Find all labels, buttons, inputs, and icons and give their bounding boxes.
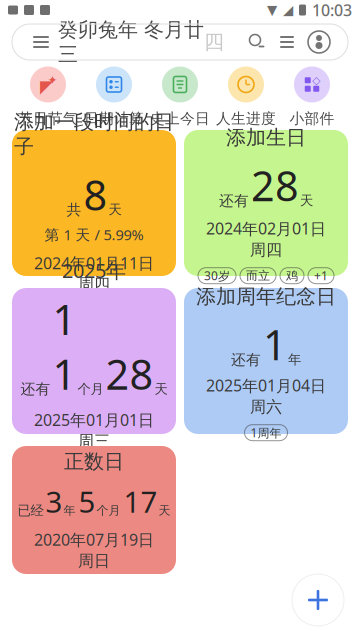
staticText: 28: [105, 346, 153, 401]
button[interactable]: 添加生日: [184, 130, 348, 276]
staticText: ◇: [312, 74, 320, 86]
staticText: 1周年: [250, 425, 281, 441]
button[interactable]: 日期计算: [81, 66, 147, 127]
button[interactable]: 正数日: [12, 446, 176, 574]
staticText: 2020年07月19日: [34, 529, 154, 550]
staticText: 天: [158, 503, 170, 518]
staticText: 30岁: [204, 268, 230, 284]
staticText: 天: [154, 381, 167, 397]
staticText: ▼: [267, 2, 277, 17]
button[interactable]: 癸卯兔年 冬月廿三: [58, 25, 242, 59]
staticText: 2025年01月01日: [34, 409, 154, 430]
staticText: 2025年01月04日: [206, 375, 326, 396]
button[interactable]: ✦: [15, 66, 81, 127]
staticText: 小部件: [289, 109, 334, 127]
staticText: 天: [300, 192, 313, 209]
staticText: 周三: [78, 431, 110, 451]
staticText: 添加周年纪念日: [196, 284, 336, 309]
staticText: 年: [288, 351, 301, 368]
staticText: 史上今日: [150, 109, 210, 127]
staticText: 2024年01月11日: [34, 252, 154, 273]
staticText: 周四: [78, 274, 110, 294]
staticText: 28: [251, 158, 299, 213]
staticText: ✦: [47, 73, 57, 87]
staticText: 5: [78, 482, 95, 521]
staticText: 添加生日: [226, 125, 306, 150]
staticText: 10:03: [312, 0, 352, 21]
staticText: 1: [263, 317, 287, 372]
button[interactable]: Menu: [24, 25, 58, 59]
staticText: 人生进度: [216, 109, 276, 127]
staticText: 还有: [219, 192, 249, 210]
staticText: 8: [83, 167, 107, 222]
staticText: 节日节气: [18, 109, 78, 127]
button[interactable]: View options: [272, 25, 302, 59]
button[interactable]: ◇: [279, 66, 345, 127]
button[interactable]: 添加周年纪念日: [184, 288, 348, 434]
staticText: 3: [45, 482, 62, 521]
staticText: 2024年02月01日: [206, 218, 326, 239]
button[interactable]: 2025年: [12, 288, 176, 434]
button[interactable]: Add: [290, 572, 346, 628]
staticText: ◤: [40, 77, 53, 96]
button[interactable]: 添加一段时间的日子: [12, 130, 176, 276]
staticText: 17: [123, 482, 157, 521]
button[interactable]: 史上今日: [147, 66, 213, 127]
staticText: 天: [108, 201, 121, 218]
staticText: 已经: [17, 502, 43, 519]
staticText: 而立: [246, 268, 270, 283]
staticText: 共: [66, 201, 81, 219]
staticText: +1: [314, 268, 328, 284]
button[interactable]: Search: [242, 25, 272, 59]
staticText: 四: [204, 30, 224, 54]
staticText: 周四: [250, 240, 282, 260]
staticText: 还有: [20, 380, 50, 398]
staticText: 2025年: [62, 257, 126, 283]
staticText: 日期计算: [84, 109, 144, 127]
staticText: 年: [63, 503, 75, 518]
staticText: 第 1 天 / 5.99%: [44, 225, 143, 244]
staticText: 鸡: [286, 268, 298, 283]
staticText: 周六: [250, 397, 282, 417]
staticText: 11: [52, 291, 76, 401]
staticText: 正数日: [64, 449, 124, 474]
staticText: 周日: [78, 551, 110, 571]
staticText: 个月: [77, 381, 103, 397]
button[interactable]: 人生进度: [213, 66, 279, 127]
staticText: ◢: [283, 2, 293, 17]
staticText: 还有: [231, 351, 261, 369]
staticText: 添加一段时间的日子: [14, 110, 174, 159]
button[interactable]: Account: [302, 25, 336, 59]
staticText: 癸卯兔年 冬月廿三: [58, 17, 204, 66]
staticText: 个月: [96, 503, 120, 518]
